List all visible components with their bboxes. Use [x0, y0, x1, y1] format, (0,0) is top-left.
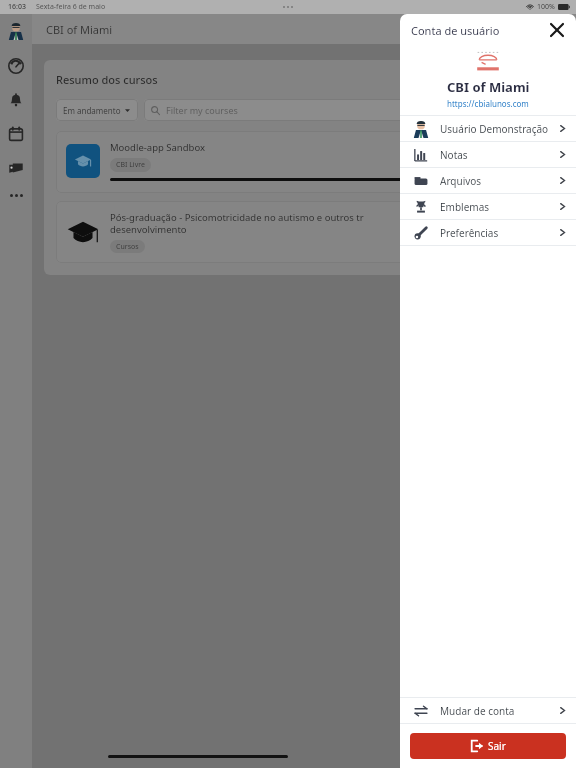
button[interactable]: Usuário Demonstração — [400, 116, 576, 141]
staticText: 16:03 — [8, 2, 26, 12]
button[interactable]: Sair — [410, 733, 566, 759]
button[interactable]: Fechar — [546, 19, 568, 41]
staticText: Em andamento — [63, 105, 121, 116]
button[interactable]: Emblemas — [400, 194, 576, 219]
staticText: CBI of Miami — [46, 22, 113, 37]
staticText: CBI Livre — [116, 160, 145, 170]
staticText: Cursos — [116, 242, 139, 251]
staticText: Filter my courses — [166, 104, 238, 116]
staticText: Emblemas — [440, 200, 558, 214]
staticText: Conta de usuário — [411, 23, 500, 38]
staticText: Sair — [488, 739, 506, 753]
staticText: CBI of Miami — [447, 78, 530, 96]
staticText: Usuário Demonstração — [440, 122, 558, 136]
staticText: 100% — [537, 2, 555, 12]
button[interactable]: Preferências — [400, 220, 576, 245]
staticText: Arquivos — [440, 174, 558, 188]
staticText: Mudar de conta — [440, 704, 558, 718]
staticText: Notas — [440, 148, 558, 162]
staticText: Preferências — [440, 226, 558, 240]
button[interactable]: Mudar de conta — [400, 698, 576, 723]
button[interactable]: https://cbialunos.com — [447, 98, 529, 109]
staticText: Moodle-app Sandbox — [110, 141, 205, 154]
staticText: Pós-graduação - Psicomotricidade no auti… — [110, 211, 364, 236]
staticText: Sexta-feira 6 de maio — [36, 2, 106, 12]
button[interactable]: Notas — [400, 142, 576, 167]
button[interactable]: Arquivos — [400, 168, 576, 193]
staticText: Resumo dos cursos — [56, 72, 158, 87]
